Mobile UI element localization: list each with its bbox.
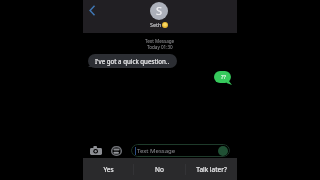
- button[interactable]: Back: [83, 2, 100, 19]
- button[interactable]: Stickers: [109, 143, 124, 158]
- staticText: Yes: [103, 165, 114, 174]
- staticText: Today 01:30: [147, 44, 173, 50]
- button[interactable]: Talk later?: [186, 158, 237, 180]
- staticText: Text Message: [145, 38, 175, 44]
- staticText: ??: [221, 73, 226, 81]
- staticText: S: [156, 3, 163, 18]
- staticText: Seth: [150, 21, 162, 28]
- staticText: Talk later?: [196, 165, 227, 174]
- button[interactable]: Seth: [150, 21, 168, 28]
- button[interactable]: Yes: [83, 158, 133, 180]
- button[interactable]: No: [134, 158, 185, 180]
- staticText: No: [155, 165, 164, 174]
- staticText: Text Message: [137, 147, 176, 155]
- button[interactable]: S: [150, 2, 168, 20]
- button[interactable]: Text Message: [131, 144, 230, 157]
- staticText: I've got a quick question..: [95, 57, 170, 65]
- button[interactable]: ??: [214, 71, 232, 85]
- button[interactable]: I've got a quick question..: [88, 54, 177, 68]
- button[interactable]: Camera: [88, 143, 103, 158]
- button[interactable]: Send: [218, 146, 228, 156]
